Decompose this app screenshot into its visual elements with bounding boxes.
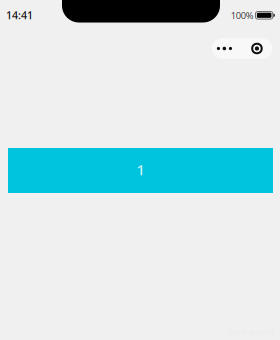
staticText: 100% <box>231 9 254 22</box>
staticText: 14:41 <box>6 8 33 22</box>
button[interactable]: More <box>212 38 242 59</box>
button[interactable]: 1 <box>8 148 273 193</box>
staticText: 1 <box>136 160 144 179</box>
button[interactable]: Close <box>242 38 272 59</box>
